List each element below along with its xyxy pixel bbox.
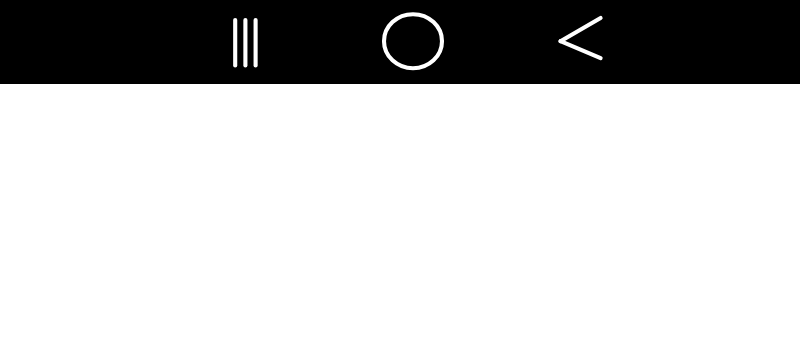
button[interactable]: Recent apps [203,0,287,84]
button[interactable]: Home [371,0,455,84]
button[interactable]: Back [539,0,623,84]
